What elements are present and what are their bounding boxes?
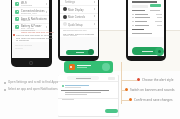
staticText: Notifications xyxy=(21,28,36,31)
staticText: under Display xyxy=(63,34,78,37)
staticText: Assistant xyxy=(21,19,31,22)
staticText: Connected xyxy=(21,4,33,7)
button[interactable] xyxy=(105,109,118,113)
staticText: Tap the app you want to change xyxy=(16,33,52,36)
button[interactable] xyxy=(12,8,49,16)
button[interactable] xyxy=(12,0,49,8)
staticText: All apps xyxy=(15,47,24,50)
button[interactable] xyxy=(60,20,98,28)
button[interactable]: Action xyxy=(155,47,164,56)
staticText: Switch on banners and sounds xyxy=(130,88,175,92)
staticText: Quick Setup xyxy=(68,23,83,27)
staticText: Main Display xyxy=(68,8,84,12)
button[interactable] xyxy=(12,16,49,24)
button[interactable] xyxy=(60,13,98,21)
staticText: to continue xyxy=(16,38,29,41)
staticText: Recently opened xyxy=(15,44,33,47)
staticText: Recommended for you xyxy=(63,29,87,32)
button[interactable] xyxy=(132,47,163,55)
button[interactable] xyxy=(12,23,49,31)
staticText: Select an app and open Notifications xyxy=(8,87,58,91)
staticText: Open the list and pick an app xyxy=(21,30,54,33)
staticText: Connected devices xyxy=(21,9,45,13)
button[interactable]: Send xyxy=(88,49,94,55)
staticText: Off Mode: Find it in Settings xyxy=(63,32,95,35)
staticText: Confirm and save changes xyxy=(134,98,173,102)
staticText: Main Controls xyxy=(68,15,86,19)
button[interactable] xyxy=(60,5,98,13)
button[interactable] xyxy=(64,61,113,73)
staticText: Bluetooth, cast xyxy=(21,12,37,15)
button[interactable] xyxy=(67,76,99,80)
staticText: Wi-Fi xyxy=(21,1,28,5)
staticText: Open Settings and scroll to find Apps xyxy=(8,80,59,84)
staticText: 82% - 5h left xyxy=(21,27,34,30)
staticText: Battery & Power xyxy=(21,24,42,28)
button[interactable] xyxy=(66,50,93,55)
staticText: and open its alert settings menu xyxy=(16,36,53,39)
staticText: Apps & Notifications xyxy=(21,17,47,21)
staticText: Choose the alert style xyxy=(142,78,174,82)
staticText: Settings xyxy=(65,0,75,4)
